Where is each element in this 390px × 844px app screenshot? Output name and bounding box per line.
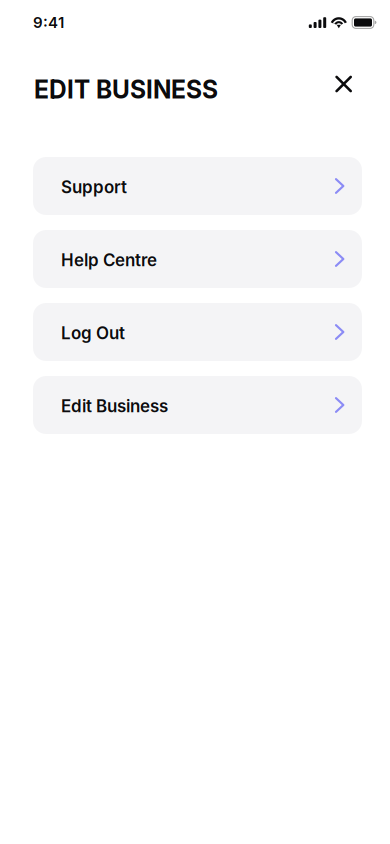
staticText: Edit Business bbox=[61, 396, 168, 416]
button[interactable]: Help Centre bbox=[33, 230, 362, 288]
staticText: Help Centre bbox=[61, 250, 157, 270]
button[interactable]: Edit Business bbox=[33, 376, 362, 434]
staticText: 9:41 bbox=[33, 13, 64, 32]
staticText: Log Out bbox=[61, 323, 125, 343]
button[interactable]: Log Out bbox=[33, 303, 362, 361]
button[interactable]: Close bbox=[324, 65, 363, 103]
staticText: Support bbox=[61, 177, 127, 197]
button[interactable]: Support bbox=[33, 157, 362, 215]
staticText: EDIT BUSINESS bbox=[34, 75, 218, 104]
